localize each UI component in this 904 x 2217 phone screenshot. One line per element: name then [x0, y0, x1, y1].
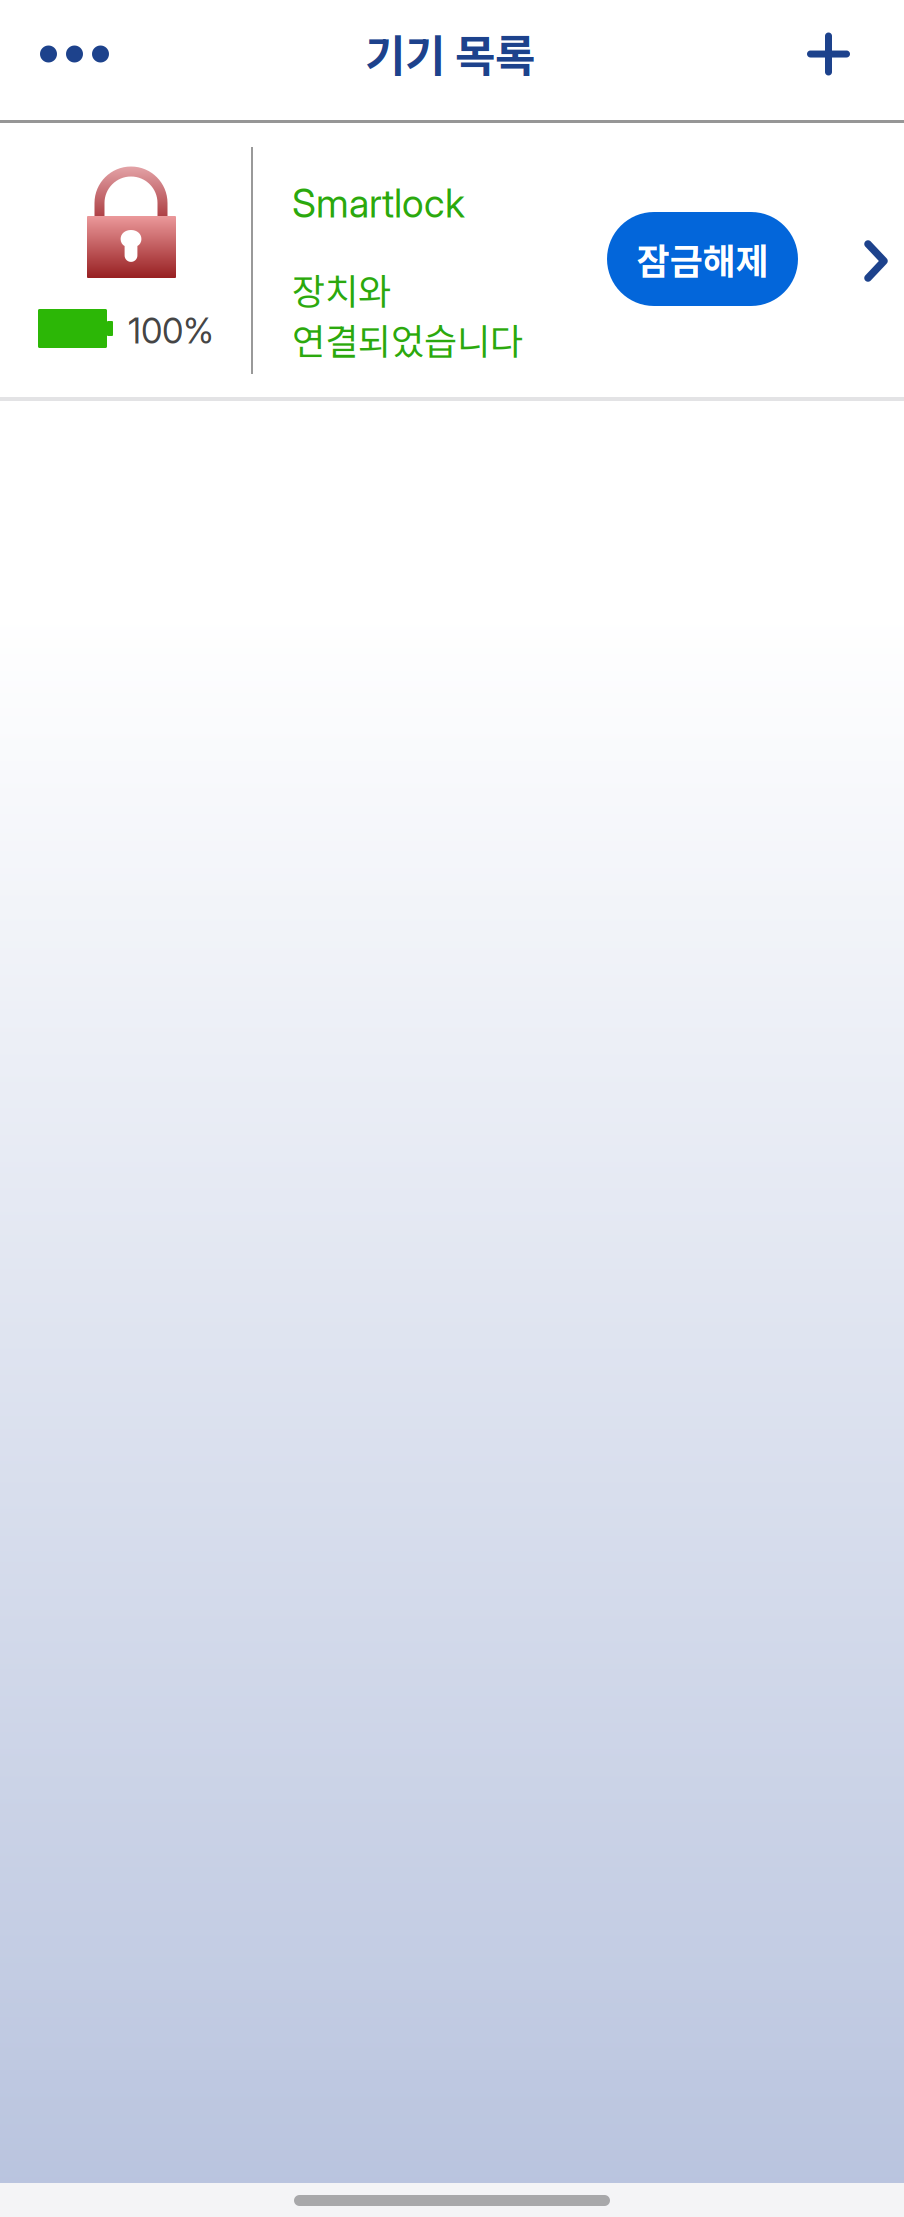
button[interactable]: Add device: [776, 4, 881, 104]
staticText: 100%: [128, 310, 214, 352]
staticText: 잠금해제: [636, 233, 768, 285]
button[interactable]: 잠금해제: [607, 212, 798, 306]
staticText: 연결되었습니다: [292, 313, 523, 365]
button[interactable]: 100%: [0, 123, 904, 397]
staticText: Smartlock: [292, 180, 465, 227]
button[interactable]: More options: [18, 4, 131, 104]
staticText: 장치와: [292, 263, 391, 315]
staticText: 기기 목록: [365, 21, 535, 85]
